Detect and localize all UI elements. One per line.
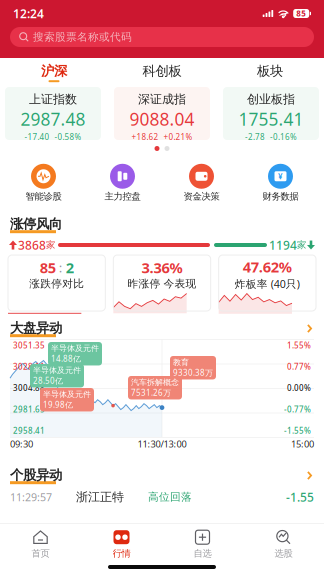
button[interactable]: 资金决策	[162, 164, 241, 202]
staticText: 85	[296, 8, 306, 19]
staticText: +18.62	[131, 132, 158, 142]
staticText: 家	[46, 239, 55, 251]
button[interactable]: 深证成指	[114, 87, 210, 140]
staticText: 财务数据	[262, 191, 298, 202]
staticText: 47.62%	[243, 257, 292, 277]
button[interactable]: 85	[8, 255, 105, 311]
button[interactable]: 创业板指	[223, 87, 319, 140]
staticText: 半导体及元件	[43, 389, 91, 399]
staticText: +0.21%	[163, 132, 192, 142]
button[interactable]: 自选	[162, 530, 243, 559]
staticText: 深证成指	[138, 92, 186, 106]
button[interactable]: 搜索股票名称或代码	[10, 27, 314, 47]
staticText: 19.98亿	[43, 399, 73, 410]
button[interactable]: 主力控盘	[83, 164, 162, 202]
staticText: 1194	[269, 237, 297, 253]
staticText: 首页	[31, 548, 49, 559]
staticText: -17.40	[24, 132, 49, 142]
button[interactable]: 47.62%	[219, 255, 316, 311]
button[interactable]: 3.36%	[113, 255, 211, 311]
staticText: 12:24	[13, 5, 44, 21]
staticText: -2.78	[245, 132, 265, 142]
staticText: 0.77%	[287, 361, 311, 372]
staticText: 14.88亿	[51, 353, 81, 364]
button[interactable]: 11:29:57	[0, 486, 324, 508]
staticText: 涨停风向	[10, 216, 62, 232]
button[interactable]: 科创板	[108, 58, 216, 87]
staticText: 高位回落	[148, 490, 192, 503]
staticText: 昨涨停 今表现	[127, 277, 196, 290]
staticText: 85	[40, 258, 56, 277]
staticText: 教育	[173, 357, 189, 367]
staticText: 板块	[257, 63, 283, 79]
staticText: 3868	[18, 237, 46, 253]
button[interactable]: 个股异动	[305, 467, 314, 484]
staticText: -1.55%	[284, 425, 311, 436]
staticText: 炸板率 (40只)	[235, 277, 300, 291]
staticText: 11:29:57	[10, 490, 52, 504]
staticText: 上证指数	[29, 92, 77, 106]
staticText: 个股异动	[10, 467, 62, 483]
staticText: 11:30/13:00	[137, 438, 186, 450]
staticText: 选股	[274, 548, 292, 559]
staticText: 汽车拆解概念	[131, 377, 179, 387]
staticText: :	[59, 259, 63, 276]
staticText: 大盘异动	[10, 320, 62, 336]
staticText: 2958.41	[13, 425, 45, 436]
button[interactable]: 行情	[81, 530, 162, 559]
staticText: 0.00%	[287, 383, 311, 393]
staticText: 自选	[193, 548, 211, 559]
staticText: 家	[297, 239, 306, 251]
button[interactable]: 板块	[216, 58, 324, 87]
staticText: 9088.04	[129, 107, 194, 130]
staticText: 9330.38万	[173, 367, 213, 378]
button[interactable]: 智能诊股	[4, 164, 83, 202]
button[interactable]: ¥	[241, 164, 320, 202]
staticText: 2	[66, 258, 74, 277]
staticText: 智能诊股	[25, 191, 61, 202]
staticText: 3004.88	[13, 383, 45, 393]
staticText: 1755.41	[238, 107, 303, 130]
staticText: 半导体及元件	[33, 365, 81, 375]
staticText: 15:00	[291, 438, 314, 450]
staticText: 1.55%	[287, 340, 311, 351]
staticText: 2987.48	[20, 107, 85, 130]
button[interactable]: 上证指数	[5, 87, 101, 140]
staticText: 3.36%	[141, 258, 182, 277]
staticText: 7531.26万	[131, 387, 171, 398]
staticText: 半导体及元件	[51, 343, 99, 353]
staticText: -0.16%	[270, 132, 297, 142]
staticText: 资金决策	[183, 191, 219, 202]
staticText: 涨跌停对比	[29, 277, 84, 290]
staticText: 创业板指	[247, 92, 295, 106]
staticText: -1.55	[286, 489, 314, 505]
staticText: 3051.35	[13, 340, 45, 351]
staticText: 沪深	[41, 63, 67, 79]
staticText: 2981.65	[13, 404, 45, 415]
staticText: 09:30	[10, 438, 33, 450]
staticText: 28.50亿	[33, 375, 63, 386]
staticText: 搜索股票名称或代码	[33, 30, 132, 43]
staticText: 主力控盘	[104, 191, 140, 202]
staticText: 3028.11	[13, 361, 45, 372]
button[interactable]: 大盘异动	[305, 320, 314, 337]
button[interactable]: 首页	[0, 530, 81, 559]
staticText: -0.58%	[54, 132, 81, 142]
button[interactable]: 沪深	[0, 58, 108, 87]
staticText: 浙江正特	[76, 490, 124, 504]
staticText: 科创板	[142, 63, 181, 79]
staticText: ¥	[278, 171, 283, 182]
button[interactable]: 选股	[243, 530, 324, 559]
staticText: -0.77%	[284, 404, 311, 415]
staticText: 行情	[112, 548, 130, 559]
